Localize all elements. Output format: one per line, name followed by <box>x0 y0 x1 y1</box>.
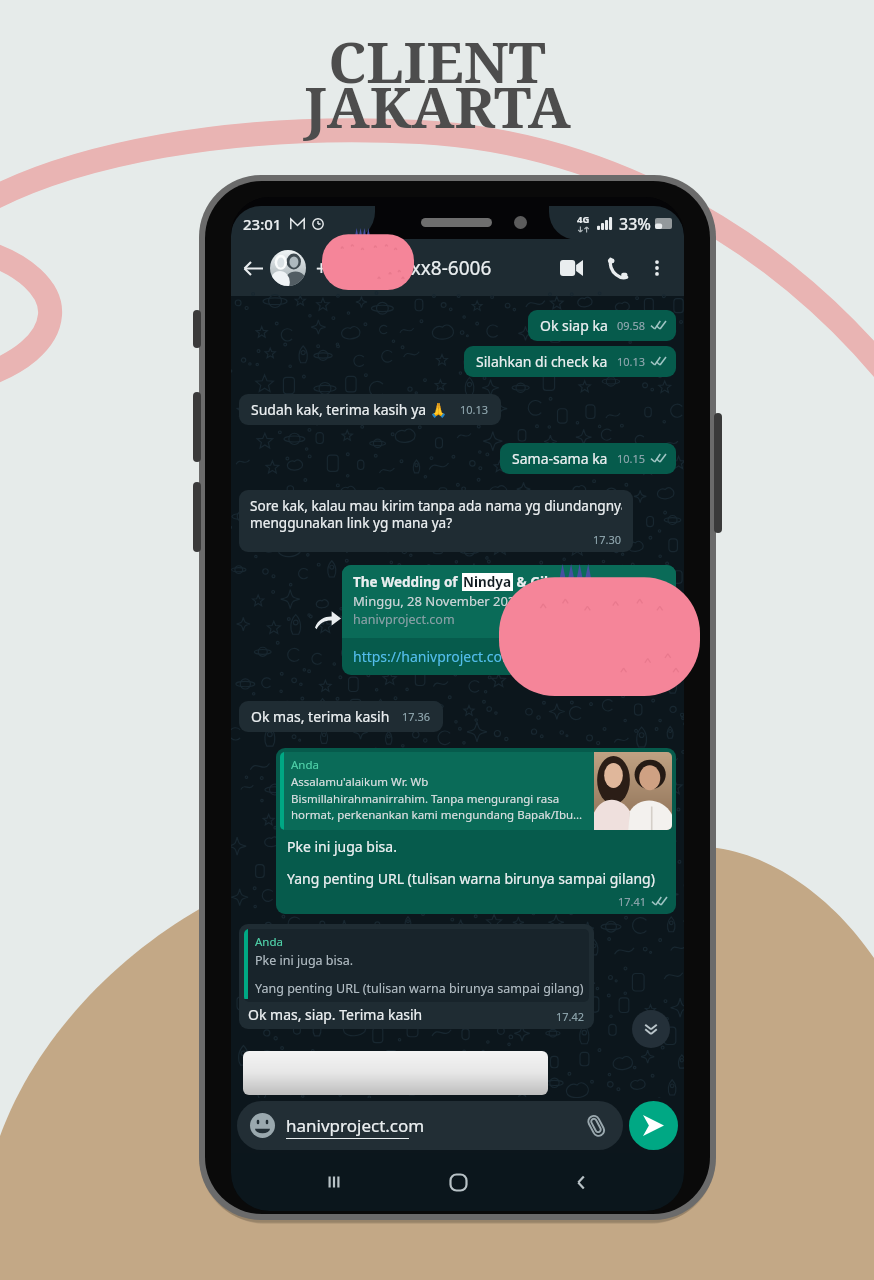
staticText: Sudah kak, terima kasih ya 🙏 <box>251 400 448 419</box>
button[interactable]: The Wedding of <box>342 565 676 675</box>
staticText: +62 8xxx-xxx8-6006 <box>316 255 492 281</box>
staticText: hanivproject.com <box>286 1114 425 1137</box>
staticText: Yang penting URL (tulisan warna birunya … <box>287 869 655 888</box>
staticText: Yang penting URL (tulisan warna birunya … <box>255 980 584 997</box>
button[interactable]: Ok mas, terima kasih <box>251 707 431 726</box>
button[interactable]: Back <box>560 1161 602 1203</box>
button[interactable]: hanivproject.com <box>250 1101 610 1150</box>
staticText: Silahkan di check ka <box>476 352 608 371</box>
staticText: 4G <box>577 213 590 226</box>
button[interactable]: Home <box>437 1161 479 1203</box>
staticText: Anda <box>291 757 319 773</box>
staticText: 23:01 <box>243 214 282 234</box>
button[interactable]: Voice call <box>602 253 632 283</box>
button[interactable]: Recents <box>313 1161 355 1203</box>
staticText: 17.42 <box>556 1009 585 1024</box>
button[interactable]: Scroll to bottom <box>632 1010 670 1048</box>
button[interactable]: Anda <box>280 752 672 910</box>
staticText: Anda <box>255 934 283 950</box>
button[interactable]: Silahkan di check ka <box>476 352 666 371</box>
button[interactable]: Sore kak, kalau mau kirim tanpa ada nama… <box>250 496 622 547</box>
staticText: https://hanivproject.com/ <box>353 647 521 666</box>
staticText: hanivproject.com <box>353 611 455 628</box>
button[interactable]: Anda <box>244 929 589 1024</box>
staticText: 33% <box>619 213 651 235</box>
staticText: Ok siap ka <box>540 316 608 335</box>
staticText: 10.13 <box>460 402 489 417</box>
staticText: Assalamu'alaikum Wr. Wb Bismillahirahman… <box>291 774 583 822</box>
staticText: Pke ini juga bisa. <box>255 952 354 969</box>
staticText: 17.36 <box>402 709 431 724</box>
button[interactable]: Sama-sama ka <box>512 449 666 468</box>
button[interactable]: Attach <box>582 1112 610 1140</box>
staticText: JAKARTA <box>304 67 571 145</box>
staticText: CLIENT <box>328 22 546 100</box>
staticText: 10.15 <box>617 451 646 466</box>
staticText: 10.13 <box>617 354 646 369</box>
staticText: Nindya <box>463 573 512 591</box>
button[interactable]: Back <box>239 254 267 282</box>
button[interactable]: Forwarded <box>311 603 345 637</box>
staticText: Sama-sama ka <box>512 449 608 468</box>
staticText: Ok mas, terima kasih <box>251 707 390 726</box>
button[interactable]: Send <box>629 1101 678 1150</box>
button[interactable]: Video call <box>556 253 586 283</box>
staticText: Sore kak, kalau mau kirim tanpa ada nama… <box>250 496 622 532</box>
staticText: 09.58 <box>617 318 646 333</box>
staticText: Minggu, 28 November 2021 <box>353 592 523 610</box>
staticText: The Wedding of <box>353 573 462 591</box>
button[interactable]: Ok siap ka <box>540 316 666 335</box>
button[interactable]: More options <box>644 255 670 281</box>
staticText: Pke ini juga bisa. <box>287 837 397 856</box>
staticText: & Gilang <box>513 573 574 591</box>
staticText: 17.30 <box>593 532 622 547</box>
staticText: Ok mas, siap. Terima kasih <box>248 1005 423 1024</box>
staticText: 17.41 <box>618 894 647 909</box>
button[interactable]: Sudah kak, terima kasih ya 🙏 <box>251 400 489 419</box>
